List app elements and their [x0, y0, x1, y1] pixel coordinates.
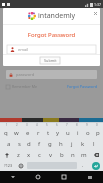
- button[interactable]: g: [44, 138, 55, 149]
- button[interactable]: s: [14, 138, 24, 149]
- button[interactable]: password: [6, 70, 97, 79]
- button[interactable]: v: [45, 149, 56, 160]
- button[interactable]: Recents: [51, 171, 77, 183]
- staticText: v: [49, 151, 53, 159]
- button[interactable]: j: [66, 138, 77, 149]
- button[interactable]: e: [22, 127, 33, 138]
- staticText: s: [18, 140, 21, 148]
- button[interactable]: z: [13, 149, 23, 160]
- button[interactable]: Forgot Password: [67, 84, 97, 89]
- staticText: r: [37, 129, 40, 137]
- staticText: 4: [36, 123, 38, 127]
- staticText: p: [96, 129, 100, 137]
- button[interactable]: c: [34, 149, 45, 160]
- staticText: email: [18, 47, 29, 52]
- button[interactable]: i: [73, 127, 83, 138]
- button[interactable]: b: [56, 149, 67, 160]
- staticText: b: [60, 151, 64, 159]
- button[interactable]: email: [7, 45, 96, 54]
- button[interactable]: w: [11, 127, 22, 138]
- button[interactable]: l: [88, 138, 99, 149]
- button[interactable]: Backspace: [89, 149, 103, 160]
- staticText: e: [26, 129, 30, 137]
- staticText: z: [17, 151, 20, 159]
- button[interactable]: Remember Me: [6, 84, 37, 89]
- button[interactable]: y: [53, 127, 63, 138]
- button[interactable]: m: [78, 149, 89, 160]
- staticText: 3: [26, 123, 28, 127]
- staticText: h: [59, 140, 63, 148]
- button[interactable]: r: [33, 127, 43, 138]
- button[interactable]: f: [34, 138, 44, 149]
- staticText: 1: [6, 123, 8, 127]
- staticText: w: [14, 129, 19, 137]
- button[interactable]: Submit: [40, 57, 60, 64]
- button[interactable]: x: [23, 149, 34, 160]
- button[interactable]: Enter: [92, 162, 100, 170]
- staticText: 1:37: [94, 2, 101, 7]
- staticText: q: [4, 129, 8, 137]
- button[interactable]: t: [43, 127, 53, 138]
- staticText: i: [77, 129, 79, 137]
- button[interactable]: Shift: [0, 149, 13, 160]
- button[interactable]: a: [4, 138, 14, 149]
- button[interactable]: h: [55, 138, 66, 149]
- button[interactable]: Hide keyboard: [77, 171, 103, 183]
- staticText: m: [81, 151, 87, 159]
- staticText: 9: [86, 123, 88, 127]
- button[interactable]: .: [78, 160, 88, 171]
- button[interactable]: o: [83, 127, 93, 138]
- button[interactable]: Back: [0, 171, 25, 183]
- button[interactable]: u: [63, 127, 73, 138]
- staticText: 2: [16, 123, 18, 127]
- staticText: Remember Me: [12, 84, 37, 89]
- button[interactable]: Close: [92, 10, 98, 16]
- staticText: 6: [56, 123, 58, 127]
- button[interactable]: p: [93, 127, 103, 138]
- staticText: x: [27, 151, 31, 159]
- staticText: u: [66, 129, 70, 137]
- staticText: 8: [76, 123, 78, 127]
- button[interactable]: ?123: [0, 160, 16, 171]
- staticText: 5: [46, 123, 48, 127]
- staticText: k: [81, 140, 85, 148]
- staticText: a: [7, 140, 11, 148]
- button[interactable]: k: [77, 138, 88, 149]
- button[interactable]: n: [67, 149, 78, 160]
- staticText: Forgot Password: [3, 31, 100, 39]
- staticText: 0: [96, 123, 98, 127]
- staticText: f: [38, 140, 41, 148]
- staticText: y: [56, 129, 60, 137]
- staticText: g: [48, 140, 52, 148]
- staticText: c: [38, 151, 41, 159]
- staticText: intandemly: [38, 11, 76, 21]
- button[interactable]: Emoji: [16, 160, 26, 171]
- staticText: l: [93, 140, 95, 148]
- button[interactable]: q: [0, 127, 11, 138]
- button[interactable]: d: [24, 138, 34, 149]
- staticText: .: [82, 162, 84, 169]
- staticText: password: [16, 72, 35, 77]
- staticText: n: [71, 151, 75, 159]
- staticText: t: [47, 129, 50, 137]
- staticText: o: [86, 129, 90, 137]
- staticText: j: [71, 140, 73, 148]
- staticText: 7: [66, 123, 68, 127]
- button[interactable]: Home: [25, 171, 51, 183]
- staticText: Submit: [44, 58, 57, 63]
- staticText: ?123: [4, 163, 13, 168]
- staticText: d: [27, 140, 31, 148]
